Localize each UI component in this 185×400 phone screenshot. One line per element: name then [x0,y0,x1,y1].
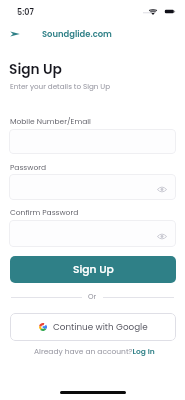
staticText: Continue with Google [53,321,148,333]
button[interactable]: Continue with Google [10,313,176,341]
staticText: Or [88,292,97,302]
button[interactable]: Sign Up [10,256,176,283]
button[interactable]: Show password [155,229,169,243]
staticText: Soundglide.com [42,28,112,40]
staticText: Sign Up [9,60,62,79]
staticText: Mobile Number/Email [10,116,91,126]
button[interactable]: Show password [155,182,169,196]
staticText: Password [10,162,47,172]
button[interactable] [9,129,176,154]
staticText: Enter your details to Sign Up [10,81,111,91]
staticText: Sign Up [73,262,114,277]
staticText: 5:07 [17,7,34,18]
button[interactable]: Show password [9,220,176,247]
button[interactable]: Show password [9,174,176,200]
staticText: Confirm Password [10,207,79,217]
button[interactable]: Already have an account?Log in [34,346,155,356]
